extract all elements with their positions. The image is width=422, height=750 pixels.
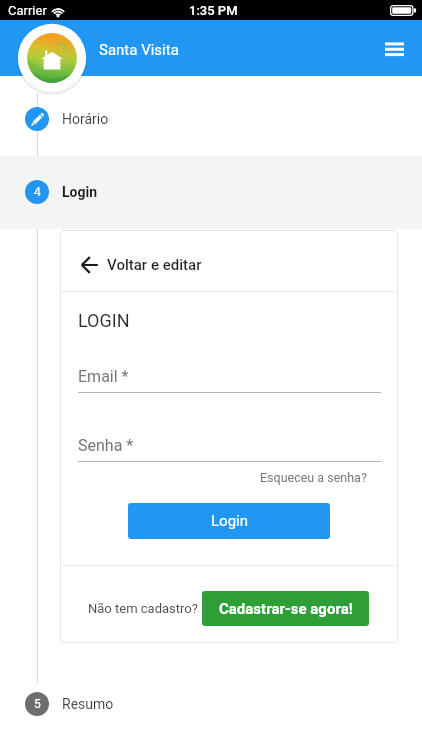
- staticText: 1:35 PM: [189, 3, 238, 18]
- button[interactable]: 4: [0, 180, 422, 204]
- staticText: Email *: [78, 367, 129, 386]
- staticText: Não tem cadastro?: [88, 601, 198, 616]
- button[interactable]: Horário: [0, 107, 422, 131]
- staticText: Voltar e editar: [107, 256, 202, 274]
- button[interactable]: Cadastrar-se agora!: [202, 591, 369, 626]
- staticText: Cadastrar-se agora!: [219, 600, 353, 618]
- staticText: 5: [34, 697, 41, 711]
- button[interactable]: Menu: [372, 27, 416, 71]
- staticText: Login: [211, 512, 248, 530]
- button[interactable]: Login: [128, 503, 330, 539]
- button[interactable]: Voltar e editar: [60, 230, 398, 292]
- staticText: 4: [34, 185, 41, 199]
- staticText: Carrier: [8, 3, 47, 18]
- staticText: Resumo: [62, 696, 114, 712]
- staticText: LOGIN: [78, 310, 130, 331]
- button[interactable]: Esqueceu a senha?: [260, 470, 367, 485]
- button[interactable]: 5: [0, 692, 422, 716]
- staticText: Horário: [62, 111, 109, 127]
- staticText: Santa Visita: [99, 41, 179, 59]
- staticText: Senha *: [78, 436, 134, 455]
- staticText: Login: [62, 184, 98, 200]
